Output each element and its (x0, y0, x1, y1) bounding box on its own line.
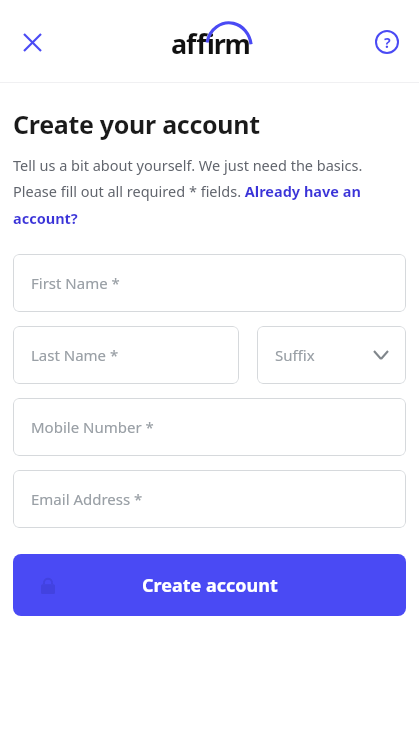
staticText: Create account (142, 573, 278, 598)
staticText: affirm (171, 25, 250, 62)
staticText: First Name * (31, 273, 120, 293)
button[interactable]: Close (10, 20, 54, 64)
staticText: ? (384, 33, 391, 52)
staticText: Tell us a bit about yourself. We just ne… (13, 155, 406, 228)
button[interactable]: Create account (13, 554, 406, 616)
button[interactable]: Email Address * (13, 470, 406, 528)
button[interactable]: Help (365, 20, 409, 64)
button[interactable]: First Name * (13, 254, 406, 312)
button[interactable]: Suffix dropdown (257, 326, 406, 384)
staticText: Last Name * (31, 345, 119, 365)
button[interactable]: Mobile Number * (13, 398, 406, 456)
staticText: Suffix (275, 345, 315, 365)
staticText: Mobile Number * (31, 417, 154, 437)
staticText: Email Address * (31, 489, 143, 509)
staticText: Create your account (13, 107, 260, 141)
button[interactable]: Last Name * (13, 326, 239, 384)
